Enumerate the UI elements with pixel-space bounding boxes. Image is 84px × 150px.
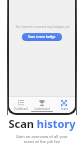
staticText: Scans bbox=[61, 107, 68, 111]
other: Leaderboard bbox=[39, 100, 45, 106]
button[interactable]: Dashboard bbox=[11, 97, 31, 111]
staticText: Leaderboard bbox=[34, 107, 50, 111]
button[interactable]: Scan a new badge bbox=[22, 33, 62, 41]
staticText: Scan history bbox=[8, 116, 76, 131]
other: Dashboard bbox=[18, 100, 24, 106]
other: Scans bbox=[61, 100, 67, 106]
staticText: Gain an overview of all your scans at th… bbox=[13, 134, 71, 144]
staticText: Dashboard bbox=[14, 107, 28, 111]
button[interactable]: Leaderboard bbox=[32, 97, 52, 111]
staticText: You haven't scanned any badges yet bbox=[15, 25, 70, 29]
button[interactable]: Scans bbox=[54, 97, 74, 111]
staticText: Scan a new badge bbox=[28, 35, 56, 39]
